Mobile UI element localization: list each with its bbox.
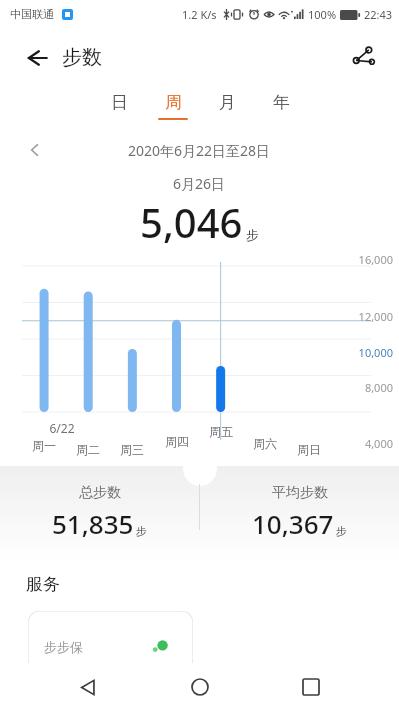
staticText: 周日: [294, 442, 324, 457]
staticText: 步: [336, 524, 347, 538]
staticText: 6月26日: [173, 174, 226, 193]
staticText: 中国联通: [10, 7, 54, 21]
staticText: 1.2 K/s: [182, 7, 217, 22]
staticText: 周五: [206, 424, 236, 439]
staticText: 服务: [26, 574, 60, 595]
button[interactable]: 月: [200, 86, 254, 132]
staticText: 步: [246, 227, 259, 243]
staticText: 周四: [162, 434, 192, 449]
staticText: 日: [111, 92, 128, 113]
button[interactable]: Home: [177, 664, 223, 710]
staticText: 8,000: [337, 380, 393, 395]
button[interactable]: 年: [254, 86, 308, 132]
button[interactable]: 步步保: [28, 611, 193, 671]
staticText: 4,000: [337, 436, 393, 451]
other: Back: [24, 46, 48, 70]
staticText: 步: [136, 524, 147, 538]
staticText: 16,000: [337, 252, 393, 267]
staticText: 周: [165, 92, 182, 113]
staticText: 10,367: [252, 506, 334, 541]
button[interactable]: 平均步数: [200, 484, 399, 541]
button[interactable]: 日: [92, 86, 146, 132]
staticText: 22:43: [364, 7, 393, 22]
staticText: 12,000: [337, 309, 393, 324]
button[interactable]: 周: [146, 86, 200, 132]
button[interactable]: Back: [18, 39, 108, 76]
staticText: 周二: [73, 442, 103, 457]
button[interactable]: Back: [65, 664, 111, 710]
staticText: 周六: [250, 436, 280, 451]
button[interactable]: Share: [345, 38, 383, 76]
staticText: 6/22: [47, 420, 77, 436]
staticText: 步数: [62, 45, 102, 70]
staticText: 步步保: [44, 639, 83, 655]
staticText: 周三: [117, 442, 147, 457]
staticText: 总步数: [79, 484, 121, 502]
staticText: 月: [219, 92, 236, 113]
staticText: 2020年6月22日至28日: [128, 141, 271, 160]
staticText: 5,046: [140, 195, 243, 249]
staticText: 平均步数: [272, 484, 328, 502]
staticText: 10,000: [337, 345, 393, 360]
staticText: 年: [273, 92, 290, 113]
staticText: 100%: [308, 7, 337, 22]
button[interactable]: 总步数: [0, 484, 199, 541]
staticText: 周一: [29, 438, 59, 453]
staticText: 51,835: [52, 506, 134, 541]
button[interactable]: Recents: [288, 664, 334, 710]
button[interactable]: Previous week: [22, 137, 48, 163]
